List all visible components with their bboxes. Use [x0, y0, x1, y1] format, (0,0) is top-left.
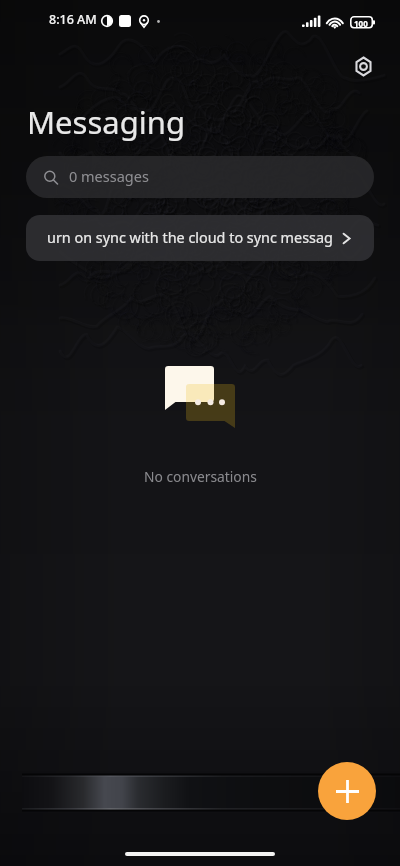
button[interactable]: New conversation	[318, 762, 376, 820]
staticText: Messaging	[27, 101, 185, 143]
button[interactable]: Settings	[345, 48, 382, 85]
staticText: urn on sync with the cloud to sync messa…	[47, 228, 332, 248]
button[interactable]: 0 messages	[26, 156, 374, 198]
staticText: 100	[354, 18, 368, 29]
staticText: No conversations	[144, 467, 257, 486]
button[interactable]: urn on sync with the cloud to sync messa…	[26, 215, 374, 261]
staticText: 0 messages	[69, 166, 149, 186]
staticText: 8:16 AM	[49, 11, 97, 28]
